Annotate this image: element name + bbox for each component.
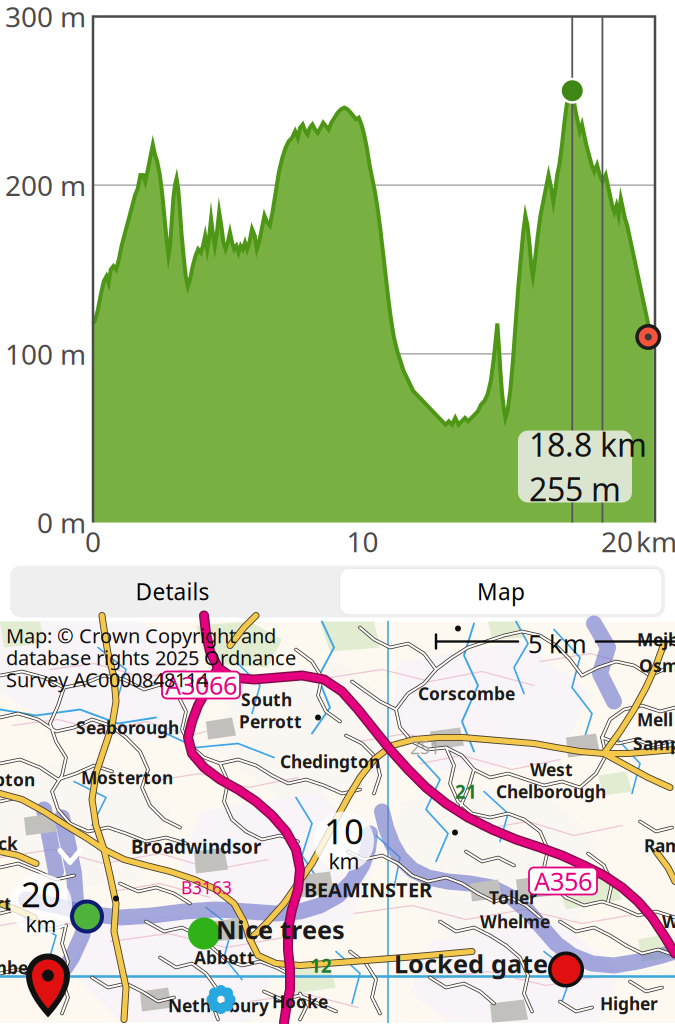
staticText: km: [328, 847, 359, 875]
staticText: Map: [477, 576, 525, 606]
staticText: W: [662, 910, 675, 933]
staticText: Seaborough: [76, 716, 179, 739]
staticText: Locked gate: [394, 947, 548, 980]
staticText: Hooke: [272, 990, 328, 1013]
staticText: 5 km: [528, 627, 587, 660]
staticText: Nice trees: [216, 913, 345, 946]
staticText: 0 m: [37, 504, 86, 541]
staticText: km: [636, 523, 675, 560]
staticText: West: [530, 758, 573, 781]
staticText: A3066: [165, 668, 237, 702]
staticText: Osm: [639, 654, 675, 677]
staticText: km: [25, 910, 56, 938]
staticText: Whelme: [480, 910, 550, 933]
staticText: Chedington: [280, 750, 380, 773]
staticText: BEAMINSTER: [304, 876, 432, 903]
staticText: 0: [85, 523, 101, 560]
staticText: rt: [0, 892, 12, 915]
staticText: 200 m: [5, 167, 86, 204]
staticText: 12: [310, 953, 332, 978]
staticText: Details: [135, 576, 209, 606]
staticText: B3163: [181, 876, 232, 899]
staticText: Mejb: [637, 628, 675, 651]
staticText: ck: [0, 832, 18, 855]
staticText: 10: [346, 523, 378, 560]
staticText: South: [241, 688, 292, 711]
staticText: Perrott: [239, 710, 302, 733]
staticText: 300 m: [5, 0, 86, 35]
staticText: pton: [0, 768, 35, 791]
staticText: 20: [21, 871, 61, 917]
staticText: Abbott: [194, 946, 255, 969]
staticText: Netherbury: [168, 994, 269, 1017]
staticText: Corscombe: [418, 682, 515, 705]
staticText: Samp: [633, 732, 675, 755]
staticText: 20: [601, 523, 633, 560]
staticText: 21: [455, 779, 477, 804]
staticText: Ram: [644, 834, 675, 857]
staticText: Survey AC0000848114: [6, 666, 208, 693]
staticText: database rights 2025 Ordnance: [6, 644, 296, 671]
button[interactable]: Map: [340, 568, 662, 614]
staticText: Toller: [489, 886, 537, 909]
staticText: A356: [534, 864, 592, 898]
staticText: Mosterton: [81, 766, 173, 789]
button[interactable]: Details: [10, 565, 335, 617]
staticText: 251: [410, 736, 440, 759]
staticText: 100 m: [5, 335, 86, 372]
staticText: 18.8 km: [529, 423, 647, 465]
staticText: 255 m: [529, 467, 621, 510]
staticText: 10: [324, 808, 364, 854]
staticText: Chelborough: [496, 780, 606, 803]
staticText: mbe: [0, 956, 28, 979]
staticText: Broadwindsor: [131, 834, 261, 859]
staticText: Higher: [600, 992, 658, 1015]
staticText: Map: © Crown Copyright and: [6, 622, 276, 649]
staticText: Mell: [637, 708, 673, 731]
